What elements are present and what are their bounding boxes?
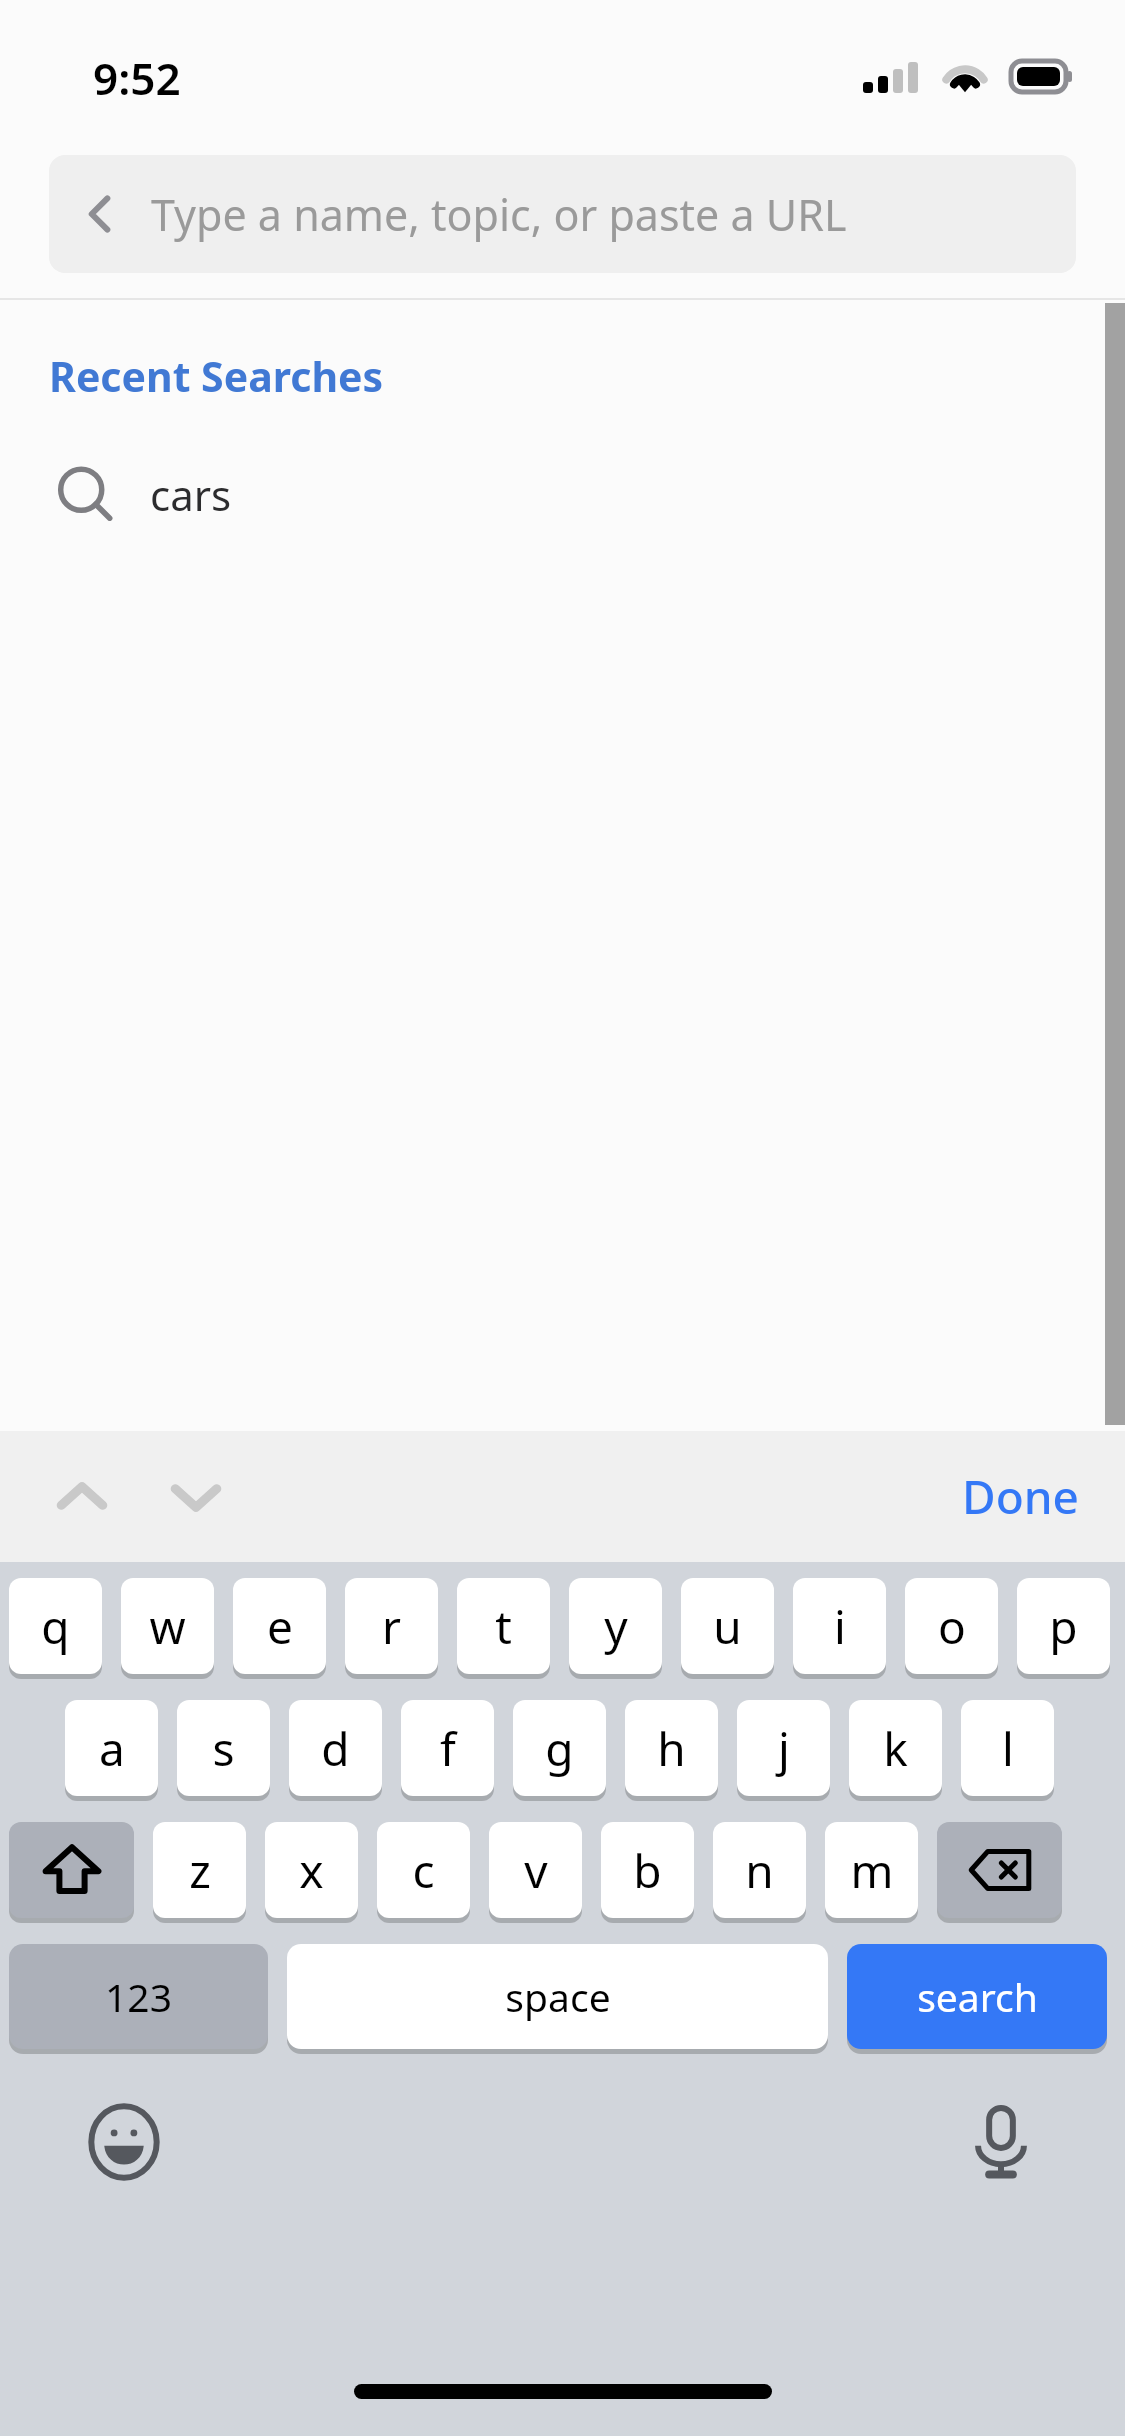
staticText: w (149, 1595, 186, 1658)
button[interactable]: e (233, 1578, 326, 1674)
staticText: z (189, 1839, 211, 1902)
staticText: 9:52 (93, 48, 181, 108)
button[interactable]: Previous field (38, 1453, 126, 1541)
button[interactable]: y (569, 1578, 662, 1674)
button[interactable]: x (265, 1822, 358, 1918)
button[interactable]: Recent Searches (49, 348, 384, 404)
button[interactable]: c (377, 1822, 470, 1918)
staticText: b (633, 1839, 662, 1902)
staticText: m (850, 1839, 894, 1902)
staticText: g (545, 1717, 574, 1780)
staticText: n (745, 1839, 774, 1902)
button[interactable]: u (681, 1578, 774, 1674)
staticText: p (1049, 1595, 1078, 1658)
button[interactable]: q (9, 1578, 102, 1674)
staticText: Done (962, 1465, 1079, 1528)
button[interactable]: Done (946, 1449, 1095, 1544)
button[interactable]: Shift (9, 1822, 134, 1918)
button[interactable]: z (153, 1822, 246, 1918)
staticText: r (382, 1595, 401, 1658)
button[interactable]: g (513, 1700, 606, 1796)
staticText: search (917, 1970, 1038, 2023)
button[interactable]: s (177, 1700, 270, 1796)
staticText: x (299, 1839, 324, 1902)
staticText: h (657, 1717, 686, 1780)
button[interactable]: Dictation (955, 2096, 1047, 2188)
staticText: 123 (105, 1970, 172, 2023)
button[interactable]: space (287, 1944, 828, 2049)
staticText: a (99, 1717, 125, 1780)
staticText: Type a name, topic, or paste a URL (151, 185, 847, 244)
button[interactable]: v (489, 1822, 582, 1918)
staticText: c (412, 1839, 435, 1902)
button[interactable]: Next field (152, 1453, 240, 1541)
button[interactable]: i (793, 1578, 886, 1674)
staticText: k (883, 1717, 908, 1780)
button[interactable]: w (121, 1578, 214, 1674)
button[interactable]: Back (49, 155, 151, 273)
staticText: u (713, 1595, 742, 1658)
button[interactable]: m (825, 1822, 918, 1918)
staticText: i (834, 1595, 846, 1658)
button[interactable]: r (345, 1578, 438, 1674)
button[interactable]: p (1017, 1578, 1110, 1674)
staticText: s (212, 1717, 235, 1780)
button[interactable]: j (737, 1700, 830, 1796)
staticText: o (938, 1595, 966, 1658)
staticText: v (524, 1839, 548, 1902)
button[interactable]: b (601, 1822, 694, 1918)
button[interactable]: o (905, 1578, 998, 1674)
staticText: e (267, 1595, 293, 1658)
button[interactable]: t (457, 1578, 550, 1674)
staticText: f (440, 1717, 456, 1780)
staticText: j (778, 1717, 790, 1780)
button[interactable]: cars (0, 440, 1125, 548)
button[interactable]: Back (49, 155, 1076, 273)
button[interactable]: l (961, 1700, 1054, 1796)
button[interactable]: d (289, 1700, 382, 1796)
button[interactable]: 123 (9, 1944, 268, 2049)
staticText: space (505, 1970, 611, 2023)
staticText: t (495, 1595, 512, 1658)
button[interactable]: h (625, 1700, 718, 1796)
button[interactable]: f (401, 1700, 494, 1796)
button[interactable]: a (65, 1700, 158, 1796)
button[interactable]: Delete (937, 1822, 1062, 1918)
staticText: d (321, 1717, 350, 1780)
staticText: y (604, 1595, 628, 1658)
staticText: l (1002, 1717, 1014, 1780)
button[interactable]: search (847, 1944, 1107, 2049)
staticText: cars (150, 466, 232, 523)
button[interactable]: k (849, 1700, 942, 1796)
button[interactable]: Emoji (78, 2096, 170, 2188)
button[interactable]: n (713, 1822, 806, 1918)
staticText: q (41, 1595, 70, 1658)
